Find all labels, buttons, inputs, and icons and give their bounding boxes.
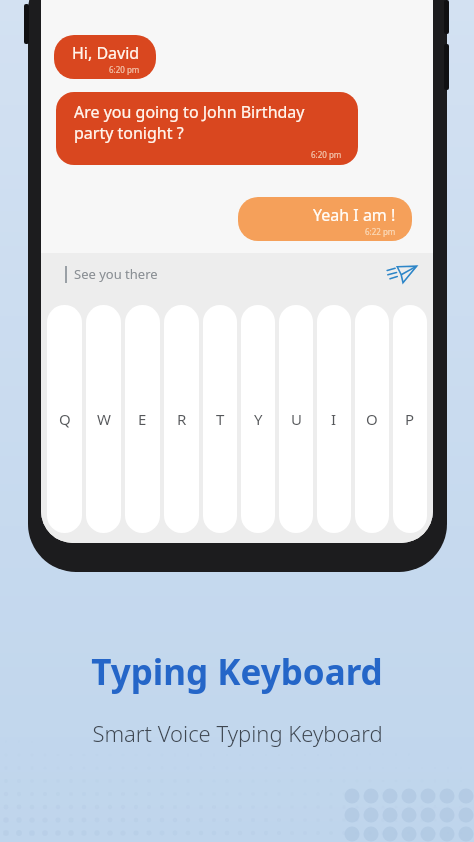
button[interactable]: Q (47, 305, 82, 533)
staticText: 6:22 pm (365, 226, 396, 237)
button[interactable]: E (125, 305, 160, 533)
staticText: W (97, 409, 111, 429)
button[interactable]: T (203, 305, 237, 533)
staticText: Typing Keyboard (91, 648, 383, 696)
staticText: Hi, David (72, 42, 140, 64)
staticText: 6:20 pm (109, 64, 140, 75)
button[interactable]: I (317, 305, 351, 533)
staticText: Are you going to John Birthday party ton… (74, 101, 342, 144)
staticText: Y (254, 409, 263, 429)
staticText: I (331, 409, 337, 429)
staticText: P (405, 409, 415, 429)
button[interactable]: R (164, 305, 199, 533)
staticText: Smart Voice Typing Keyboard (92, 718, 383, 748)
button[interactable]: W (86, 305, 121, 533)
button[interactable]: Send SMS (385, 256, 421, 292)
button[interactable]: U (279, 305, 313, 533)
staticText: Yeah I am ! (313, 204, 396, 226)
staticText: O (366, 409, 378, 429)
staticText: U (291, 409, 302, 429)
button[interactable]: Yeah I am ! (238, 197, 412, 241)
staticText: See you there (74, 265, 158, 283)
staticText: E (138, 409, 147, 429)
staticText: T (216, 409, 225, 429)
button[interactable]: Are you going to John Birthday party ton… (56, 92, 358, 165)
button[interactable]: O (355, 305, 389, 533)
staticText: R (177, 409, 187, 429)
button[interactable]: Y (241, 305, 275, 533)
button[interactable]: Hi, David (54, 35, 156, 79)
staticText: Q (59, 409, 71, 429)
staticText: 6:20 pm (311, 149, 342, 160)
button[interactable]: P (393, 305, 427, 533)
